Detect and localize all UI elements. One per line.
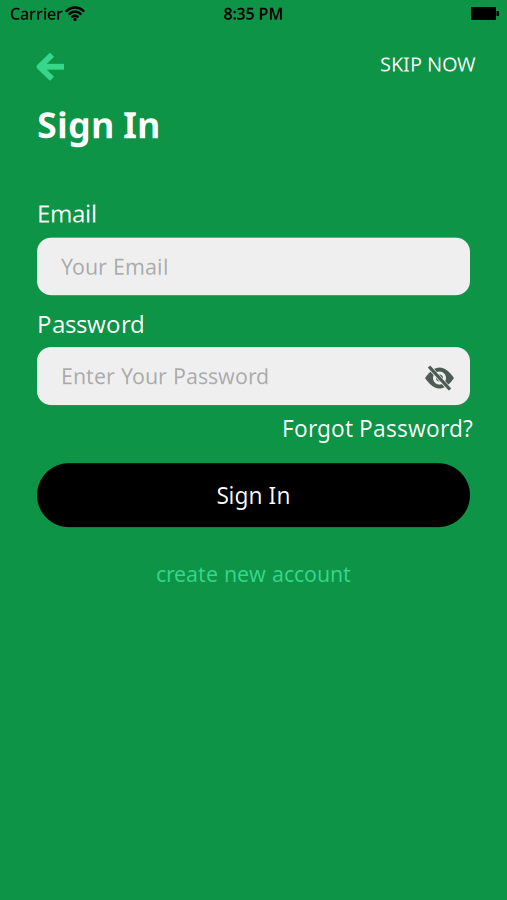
staticText: Forgot Password? <box>282 413 473 443</box>
button[interactable]: Forgot Password? <box>279 413 470 443</box>
staticText: create new account <box>156 560 351 588</box>
staticText: Your Email <box>61 252 169 281</box>
staticText: Sign In <box>216 480 290 510</box>
staticText: Email <box>37 197 97 229</box>
button[interactable]: SKIP NOW <box>374 50 470 77</box>
staticText: Enter Your Password <box>61 362 269 390</box>
button[interactable]: create new account <box>156 560 351 588</box>
button[interactable]: Show password <box>425 364 454 389</box>
staticText: Carrier <box>10 3 63 24</box>
staticText: 8:35 PM <box>223 3 283 24</box>
staticText: Sign In <box>37 100 160 148</box>
button[interactable]: Sign In <box>37 463 470 527</box>
button[interactable]: Back <box>37 51 65 77</box>
staticText: Password <box>37 308 145 340</box>
staticText: SKIP NOW <box>380 50 476 77</box>
